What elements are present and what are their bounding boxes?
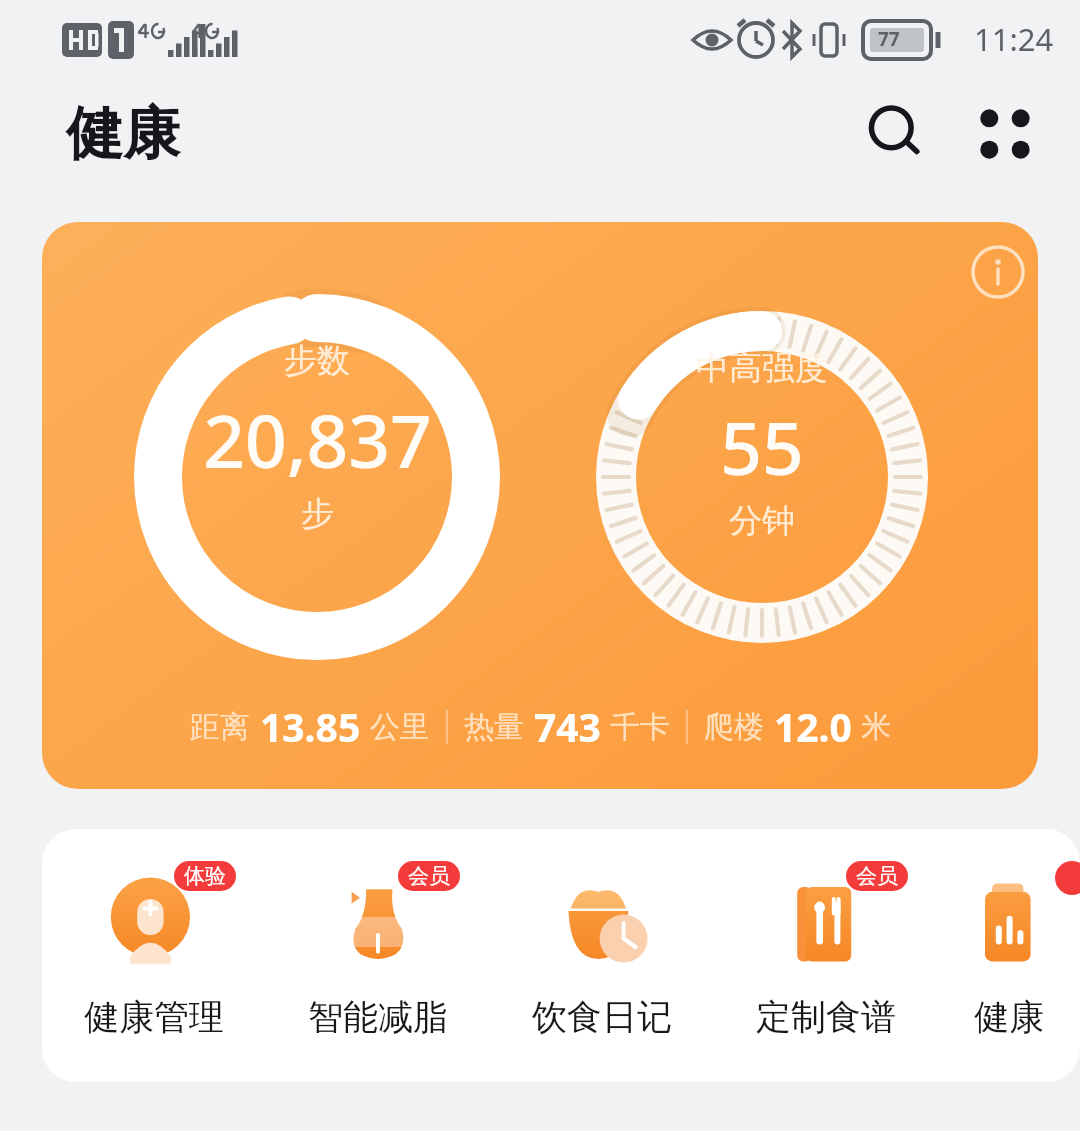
- button[interactable]: More options: [956, 85, 1054, 183]
- button[interactable]: 会员: [714, 829, 938, 1082]
- staticText: 12.0: [774, 700, 852, 753]
- staticText: 743: [534, 700, 601, 753]
- button[interactable]: 饮食日记: [490, 829, 714, 1082]
- staticText: 中高强度: [696, 347, 828, 389]
- staticText: 热量: [464, 708, 524, 746]
- staticText: 米: [861, 708, 891, 746]
- staticText: 公里: [370, 708, 430, 746]
- button[interactable]: 步数: [42, 222, 1038, 789]
- staticText: 步: [301, 493, 334, 535]
- staticText: 55: [720, 397, 804, 496]
- staticText: 健康: [66, 98, 180, 170]
- button[interactable]: 健康: [938, 829, 1080, 1082]
- staticText: 饮食日记: [532, 995, 672, 1039]
- staticText: 智能减脂: [308, 995, 448, 1039]
- staticText: 健康管理: [84, 995, 224, 1039]
- staticText: 步数: [284, 340, 350, 382]
- staticText: 分钟: [729, 500, 795, 542]
- staticText: 11:24: [974, 18, 1054, 60]
- button[interactable]: 体验: [42, 829, 266, 1082]
- staticText: 健康: [974, 995, 1044, 1039]
- staticText: 77: [878, 26, 900, 52]
- button[interactable]: 会员: [266, 829, 490, 1082]
- staticText: 定制食谱: [756, 995, 896, 1039]
- staticText: 千卡: [610, 708, 670, 746]
- staticText: 会员: [408, 863, 450, 889]
- staticText: 13.85: [260, 700, 361, 753]
- staticText: 体验: [184, 863, 226, 889]
- button[interactable]: Search: [846, 85, 944, 183]
- staticText: 20,837: [203, 390, 432, 489]
- staticText: 爬楼: [704, 708, 764, 746]
- staticText: 距离: [190, 708, 250, 746]
- staticText: 会员: [856, 863, 898, 889]
